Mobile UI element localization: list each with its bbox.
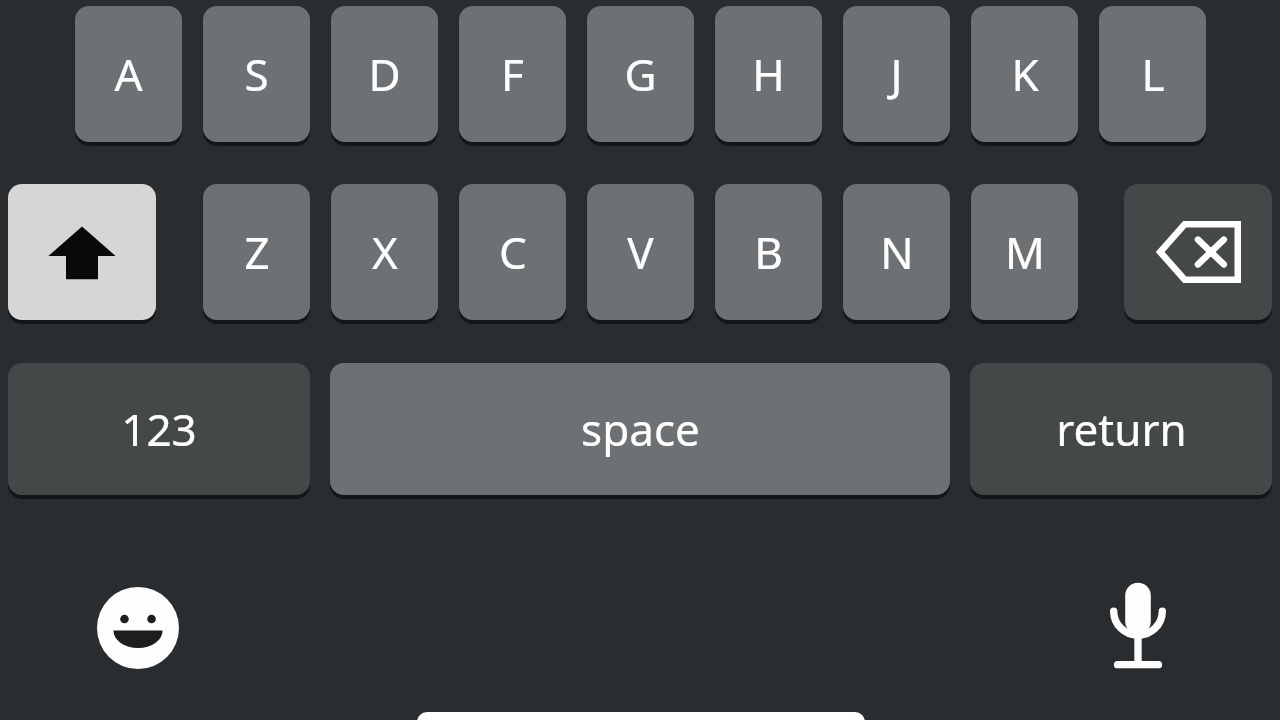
button[interactable]: V <box>587 184 694 320</box>
staticText: J <box>890 44 903 104</box>
staticText: F <box>501 44 524 104</box>
button[interactable]: space <box>330 363 950 495</box>
button[interactable]: Dictation <box>1106 580 1170 672</box>
button[interactable]: N <box>843 184 950 320</box>
staticText: L <box>1141 44 1165 104</box>
button[interactable]: K <box>971 6 1078 142</box>
button[interactable]: G <box>587 6 694 142</box>
staticText: G <box>624 44 657 104</box>
staticText: B <box>754 222 783 282</box>
button[interactable]: B <box>715 184 822 320</box>
staticText: H <box>752 44 785 104</box>
staticText: M <box>1005 222 1045 282</box>
button[interactable]: 123 <box>8 363 310 495</box>
button[interactable]: L <box>1099 6 1206 142</box>
staticText: C <box>499 222 527 282</box>
staticText: space <box>581 399 700 459</box>
staticText: Z <box>244 222 270 282</box>
staticText: return <box>1056 399 1187 459</box>
button[interactable]: J <box>843 6 950 142</box>
button[interactable]: A <box>75 6 182 142</box>
staticText: V <box>627 222 654 282</box>
button[interactable]: Backspace <box>1124 184 1272 320</box>
staticText: 123 <box>121 399 197 459</box>
button[interactable]: H <box>715 6 822 142</box>
staticText: X <box>372 222 398 282</box>
button[interactable]: S <box>203 6 310 142</box>
staticText: N <box>880 222 914 282</box>
staticText: A <box>114 44 143 104</box>
button[interactable]: F <box>459 6 566 142</box>
staticText: S <box>244 44 269 104</box>
button[interactable]: M <box>971 184 1078 320</box>
button[interactable]: Emoji keyboard <box>97 587 179 669</box>
button[interactable]: return <box>970 363 1272 495</box>
staticText: K <box>1011 44 1039 104</box>
staticText: D <box>368 44 401 104</box>
button[interactable]: Shift <box>8 184 156 320</box>
button[interactable]: X <box>331 184 438 320</box>
button[interactable]: C <box>459 184 566 320</box>
button[interactable]: D <box>331 6 438 142</box>
button[interactable]: Z <box>203 184 310 320</box>
